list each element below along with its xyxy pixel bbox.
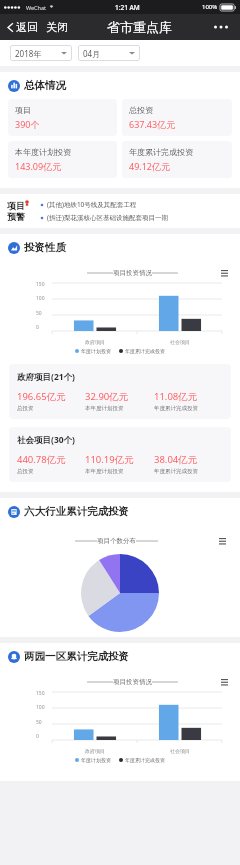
staticText: 政府项目(21个) [17, 371, 75, 383]
staticText: 本年度计划投资 [85, 405, 124, 412]
staticText: 年度累计完成投资 [125, 348, 165, 354]
staticText: 年度累计完成投资 [154, 405, 198, 412]
staticText: 50 [36, 310, 42, 317]
staticText: 预警 [7, 211, 25, 222]
button[interactable]: 项目 [8, 99, 117, 136]
staticText: 2018年 [15, 48, 42, 59]
staticText: 143.09亿元 [15, 160, 62, 172]
button[interactable]: Chart menu [221, 679, 228, 686]
staticText: 关闭 [46, 20, 68, 34]
staticText: 总投资 [129, 105, 153, 115]
staticText: 100% [202, 3, 218, 11]
button[interactable]: 政府项目(21个) [9, 364, 231, 419]
staticText: 0 [36, 324, 39, 331]
staticText: 110.19亿元 [85, 453, 134, 466]
staticText: 100 [36, 704, 45, 711]
button[interactable]: 年度计划投资 [75, 348, 111, 354]
staticText: 六大行业累计完成投资 [24, 505, 129, 518]
staticText: WeChat [26, 4, 47, 11]
staticText: 150 [36, 690, 45, 697]
button[interactable]: 总投资 [122, 99, 232, 136]
staticText: 返回 [16, 20, 38, 34]
button[interactable]: 社会项目(30个) [9, 427, 231, 482]
staticText: 项目 [15, 105, 31, 115]
staticText: 项目投资情况 [113, 678, 152, 686]
staticText: 150 [36, 281, 45, 288]
staticText: 年度计划投资 [81, 757, 111, 763]
staticText: 本年度计划投资 [15, 147, 71, 157]
button[interactable]: 年度累计完成投资 [119, 348, 165, 354]
button[interactable]: 年度计划投资 [75, 757, 111, 763]
button[interactable]: 04月 [78, 45, 140, 61]
staticText: 政府项目 [85, 339, 105, 345]
staticText: 政府项目 [85, 748, 105, 754]
staticText: 总体情况 [24, 79, 66, 92]
staticText: 100 [36, 295, 45, 302]
button[interactable]: 本年度计划投资 [8, 141, 117, 178]
staticText: 省市重点库 [107, 19, 172, 35]
staticText: 社会项目 [170, 339, 190, 345]
staticText: 637.43亿元 [129, 118, 176, 130]
staticText: (其他)地铁10号线及其配套工程 [47, 200, 137, 209]
staticText: 49.12亿元 [129, 160, 171, 172]
staticText: 社会项目(30个) [17, 434, 75, 446]
staticText: 本年度计划投资 [85, 468, 124, 475]
staticText: 04月 [83, 48, 101, 59]
button[interactable]: 关闭 [44, 18, 70, 36]
button[interactable]: More options [210, 21, 232, 33]
staticText: 440.78亿元 [17, 453, 66, 466]
button[interactable]: 年度累计完成投资 [119, 757, 165, 763]
staticText: 50 [36, 719, 42, 726]
staticText: 投资性质 [24, 241, 66, 254]
button[interactable]: 返回 [5, 18, 40, 36]
staticText: (拆迁)梨花溪核心区基础设施配套项目一期 [47, 213, 168, 222]
staticText: 项目个数分布 [97, 537, 136, 545]
staticText: 总投资 [17, 468, 34, 475]
staticText: 1:21 AM [115, 3, 140, 12]
staticText: 年度计划投资 [81, 348, 111, 354]
staticText: 38.04亿元 [154, 453, 198, 466]
staticText: 年度累计完成投资 [125, 757, 165, 763]
staticText: 年度累计完成投资 [129, 147, 193, 157]
button[interactable]: 年度累计完成投资 [122, 141, 232, 178]
button[interactable]: Chart menu [219, 538, 226, 545]
button[interactable]: Chart menu [221, 270, 228, 277]
staticText: 390个 [15, 118, 40, 130]
staticText: 总投资 [17, 405, 34, 412]
staticText: 0 [36, 733, 39, 740]
staticText: 社会项目 [170, 748, 190, 754]
staticText: 196.65亿元 [17, 390, 66, 403]
staticText: 年度累计完成投资 [154, 468, 198, 475]
staticText: 项目投资情况 [113, 269, 152, 277]
button[interactable]: 2018年 [10, 45, 72, 61]
staticText: 32.90亿元 [85, 390, 129, 403]
staticText: 项目 [7, 200, 25, 211]
staticText: 11.08亿元 [154, 390, 198, 403]
staticText: 两园一区累计完成投资 [24, 650, 129, 663]
